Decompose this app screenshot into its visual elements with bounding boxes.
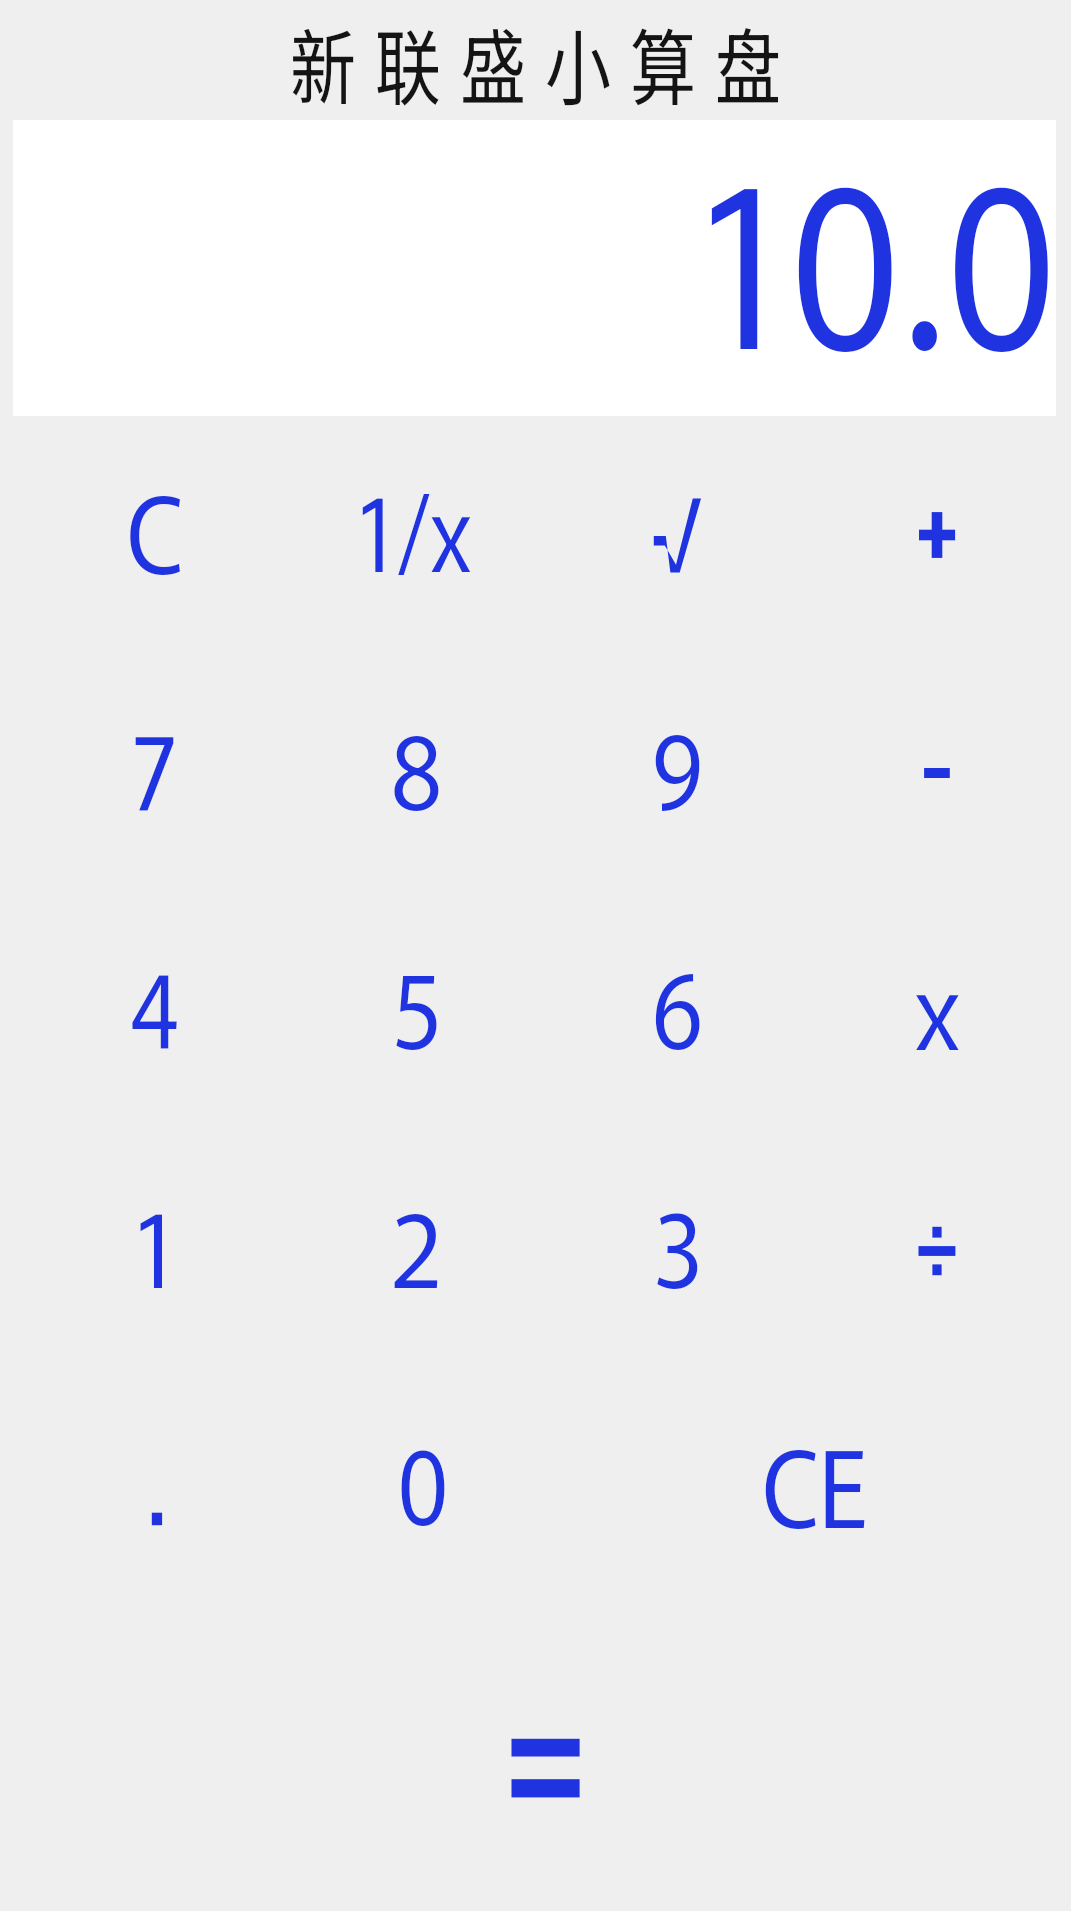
button[interactable]: 7	[30, 657, 280, 889]
button[interactable]: C	[30, 419, 280, 651]
button[interactable]: 1	[30, 1135, 280, 1367]
staticText: 联	[375, 3, 442, 121]
button[interactable]: 1/x	[288, 419, 538, 651]
staticText: x	[915, 927, 960, 1080]
button[interactable]: Decimal point	[32, 1403, 282, 1635]
staticText: 新	[290, 3, 357, 121]
staticText: 3	[653, 1165, 702, 1318]
button[interactable]: 5	[291, 896, 541, 1128]
staticText: CE	[762, 1405, 868, 1558]
button[interactable]: 0	[298, 1373, 548, 1605]
button[interactable]: 4	[30, 896, 280, 1128]
staticText: 盘	[715, 3, 782, 121]
button[interactable]: 8	[291, 657, 541, 889]
button[interactable]: Minus	[812, 657, 1062, 889]
staticText: 1/x	[355, 449, 471, 602]
button[interactable]: x	[812, 896, 1062, 1128]
staticText: 2	[390, 1165, 443, 1318]
button[interactable]: Equals	[290, 1652, 801, 1884]
staticText: 4	[130, 926, 180, 1079]
staticText: 9	[651, 687, 704, 840]
button[interactable]: Plus	[812, 419, 1062, 651]
staticText: C	[126, 451, 184, 604]
button[interactable]: Square root	[552, 419, 802, 651]
staticText: 1	[133, 1165, 177, 1318]
button[interactable]: 6	[552, 896, 802, 1128]
button[interactable]: 3	[552, 1135, 802, 1367]
staticText: 算	[630, 3, 697, 121]
staticText: 8	[390, 687, 443, 840]
staticText: 10.0	[696, 83, 1058, 415]
button[interactable]: CE	[559, 1373, 1070, 1605]
staticText: 6	[651, 926, 704, 1079]
staticText: 小	[545, 3, 612, 121]
staticText: 盛	[460, 3, 527, 121]
staticText: 5	[392, 926, 441, 1079]
button[interactable]: 9	[552, 657, 802, 889]
staticText: 0	[397, 1402, 449, 1555]
staticText: 7	[133, 687, 177, 840]
button[interactable]: Divide	[812, 1135, 1062, 1367]
button[interactable]: 2	[291, 1135, 541, 1367]
